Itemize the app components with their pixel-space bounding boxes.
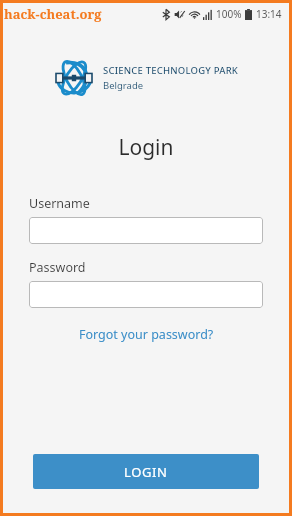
staticText: 100% [216,7,242,21]
staticText: Username [29,195,90,212]
staticText: LOGIN [124,463,168,481]
staticText: 13:14 [256,7,282,21]
staticText: Password [29,259,86,276]
button[interactable]: Forgot your password? [29,326,263,343]
staticText: Belgrade [103,79,144,92]
staticText: hack-cheat.org [4,5,102,23]
button[interactable] [29,217,263,244]
button[interactable]: LOGIN [33,454,259,489]
staticText: SCIENCE TECHNOLOGY PARK [103,64,239,77]
staticText: Forgot your password? [79,326,214,343]
button[interactable] [29,281,263,308]
staticText: Login [3,133,289,162]
